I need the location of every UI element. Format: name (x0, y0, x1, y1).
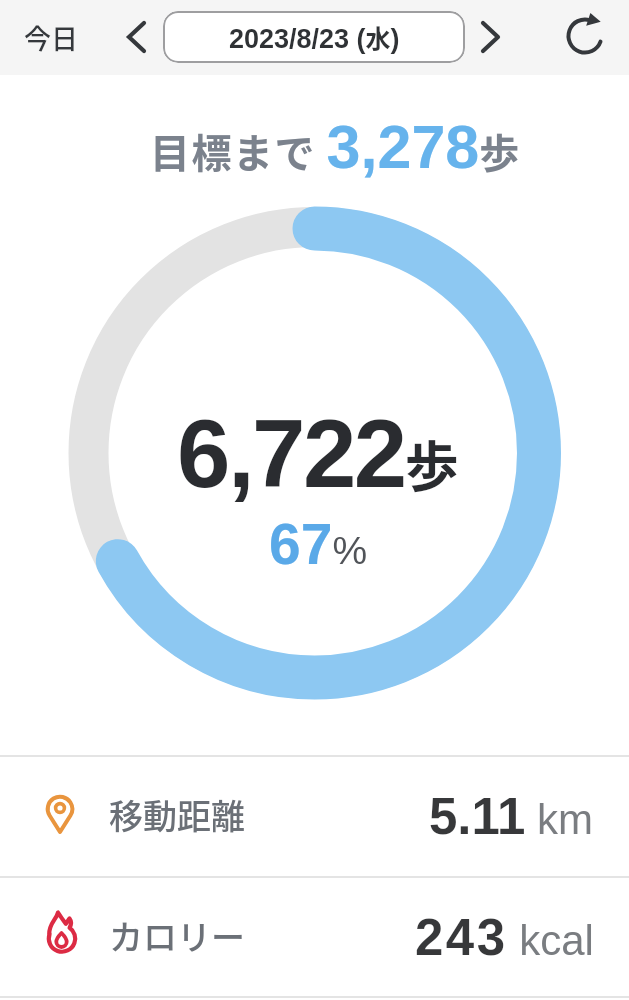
staticText: 67% (269, 512, 368, 576)
button[interactable]: 今日 (24, 18, 78, 57)
staticText: 6,722歩 (177, 400, 459, 507)
staticText: 243 kcal (415, 909, 594, 966)
staticText: 移動距離 (109, 790, 245, 839)
staticText: 5.11 km (429, 788, 594, 845)
staticText: カロリー (109, 911, 245, 960)
staticText: 目標まで 3,278歩 (150, 113, 520, 181)
button[interactable]: 2023/8/23 (水) (163, 11, 465, 63)
button[interactable] (118, 16, 154, 60)
staticText: 2023/8/23 (水) (229, 19, 400, 55)
button[interactable]: 移動距離 (0, 757, 629, 876)
button[interactable]: カロリー (0, 878, 629, 997)
staticText: 今日 (24, 18, 78, 57)
button[interactable] (561, 12, 609, 60)
button[interactable] (473, 16, 509, 60)
